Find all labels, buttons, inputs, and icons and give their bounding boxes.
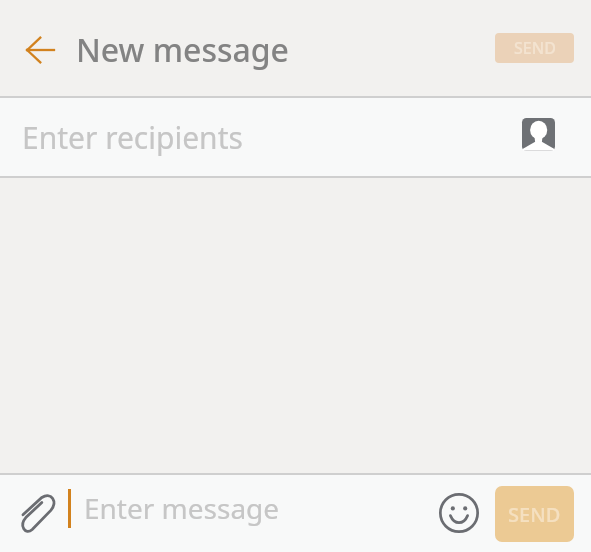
button[interactable]: Enter message [61, 475, 436, 552]
button[interactable]: SEND [495, 33, 574, 63]
button[interactable]: Attach [15, 491, 61, 537]
staticText: SEND [508, 501, 561, 528]
button[interactable]: Enter recipients [0, 98, 520, 176]
button[interactable]: Choose contacts [520, 116, 556, 152]
button[interactable]: Back [12, 22, 68, 78]
staticText: SEND [514, 37, 556, 59]
button[interactable]: Insert emoji [436, 490, 482, 536]
staticText: Enter recipients [22, 117, 243, 158]
button[interactable]: SEND [495, 486, 574, 542]
staticText: New message [76, 28, 289, 72]
staticText: Enter message [84, 489, 280, 527]
